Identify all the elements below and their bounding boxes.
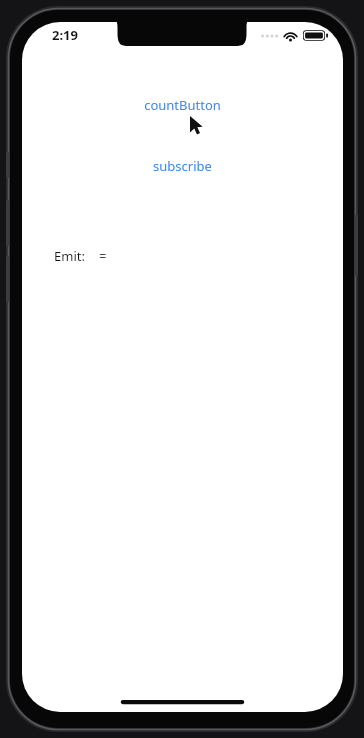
button[interactable]: subscribe [22,157,343,175]
button[interactable]: countButton [22,96,343,114]
staticText: = [99,247,107,265]
staticText: Emit: [54,247,85,265]
staticText: countButton [144,96,221,114]
staticText: subscribe [153,157,212,175]
staticText: 2:19 [52,26,78,44]
